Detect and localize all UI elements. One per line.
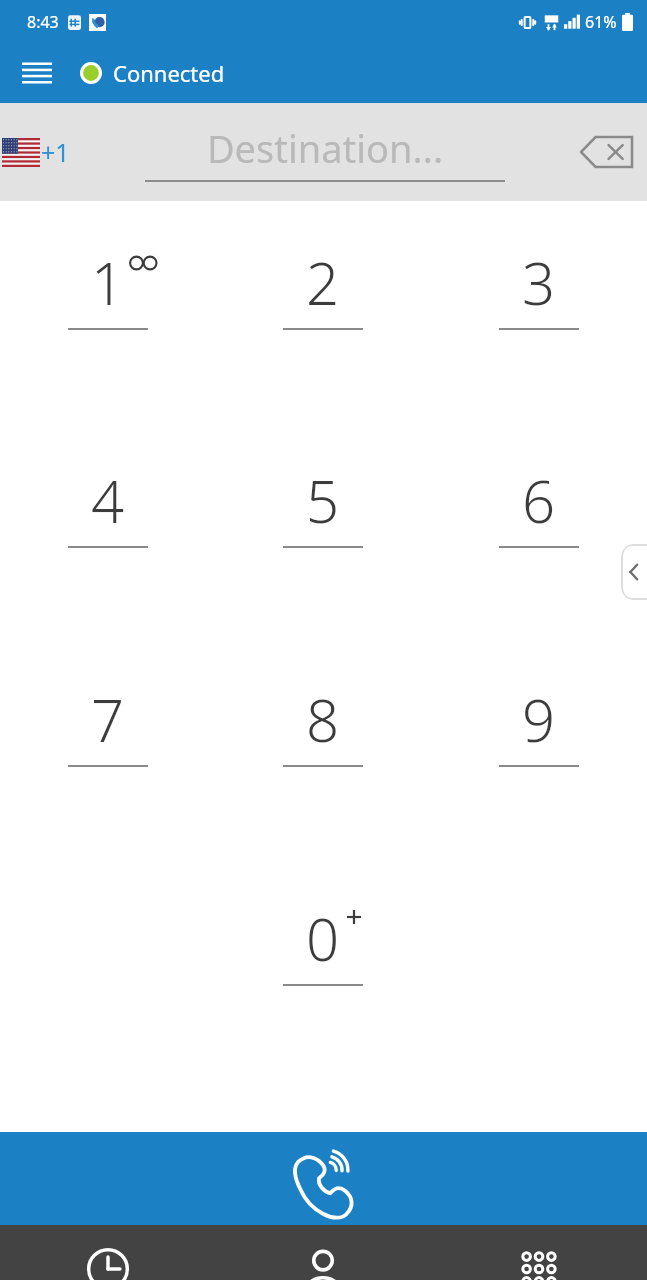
staticText: 61% [585, 11, 617, 33]
button[interactable]: 3 [464, 243, 614, 461]
staticText: 8:43 [27, 11, 59, 33]
staticText: 6 [522, 461, 556, 540]
staticText: 5 [306, 461, 340, 540]
button[interactable]: Backspace [577, 126, 635, 178]
staticText: Destination... [145, 122, 505, 174]
staticText: 4 [91, 461, 125, 540]
staticText: 0 [306, 899, 340, 978]
button[interactable]: 6 [464, 461, 614, 680]
staticText: 1 [91, 243, 125, 322]
button[interactable]: Contacts [215, 1225, 431, 1280]
button[interactable]: Dialpad [431, 1225, 647, 1280]
button[interactable]: Recents [0, 1225, 215, 1280]
button[interactable]: 9 [464, 680, 614, 899]
staticText: 7 [91, 680, 125, 759]
button[interactable]: Open panel [621, 544, 647, 600]
staticText: Connected [113, 58, 225, 88]
staticText: 2 [306, 243, 340, 322]
button[interactable]: 4 [33, 461, 183, 680]
button[interactable]: Destination... [145, 122, 505, 182]
staticText: 9 [522, 680, 556, 759]
button[interactable]: +1 [2, 135, 70, 169]
button[interactable]: Call [0, 1132, 647, 1225]
staticText: 3 [522, 243, 556, 322]
button[interactable]: Menu [10, 46, 64, 100]
staticText: +1 [41, 135, 70, 169]
button[interactable]: 0 [248, 899, 398, 1118]
button[interactable]: 7 [33, 680, 183, 899]
button[interactable]: 8 [248, 680, 398, 899]
button[interactable]: 5 [248, 461, 398, 680]
button[interactable]: 2 [248, 243, 398, 461]
button[interactable]: 1 [33, 243, 183, 461]
staticText: 8 [306, 680, 340, 759]
